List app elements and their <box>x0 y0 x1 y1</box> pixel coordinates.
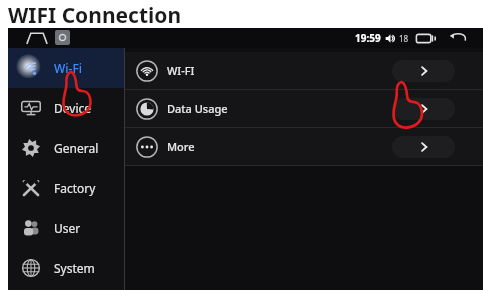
staticText: More <box>167 139 195 154</box>
staticText: General <box>54 140 99 156</box>
button[interactable]: Open WI-FI <box>392 60 455 82</box>
button[interactable]: Open Data Usage <box>392 98 455 120</box>
staticText: User <box>54 220 81 236</box>
button[interactable]: Open More <box>392 136 455 158</box>
staticText: System <box>54 260 95 276</box>
button[interactable]: More <box>125 128 483 165</box>
staticText: Device <box>54 100 92 116</box>
staticText: 19:59 <box>355 31 381 45</box>
button[interactable]: Recents <box>416 32 436 45</box>
button[interactable]: Data Usage <box>125 90 483 127</box>
button[interactable]: Home <box>26 31 48 45</box>
button[interactable]: System <box>8 248 125 288</box>
button[interactable]: Apps <box>55 30 70 45</box>
button[interactable]: Device <box>8 88 125 128</box>
button[interactable]: Factory <box>8 168 125 208</box>
staticText: Factory <box>54 180 96 196</box>
button[interactable]: User <box>8 208 125 248</box>
staticText: WIFI Connection <box>8 1 182 30</box>
staticText: WI-FI <box>167 63 195 78</box>
staticText: Wi-Fi <box>54 60 82 76</box>
button[interactable]: Wi-Fi <box>8 48 125 88</box>
staticText: 18 <box>399 33 409 44</box>
staticText: Data Usage <box>167 101 228 116</box>
button[interactable]: Back <box>450 32 467 45</box>
button[interactable]: WI-FI <box>125 52 483 89</box>
button[interactable]: General <box>8 128 125 168</box>
